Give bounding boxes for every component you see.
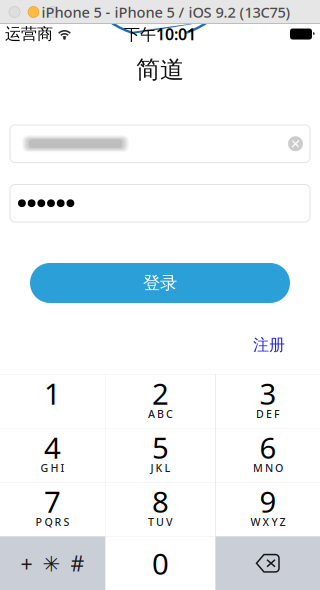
staticText: 下午10:01 <box>124 23 196 45</box>
staticText: + ✳ # <box>20 549 84 577</box>
staticText: 8 <box>152 482 169 521</box>
staticText: 注册 <box>253 335 285 355</box>
button[interactable]: 9 <box>216 482 320 536</box>
staticText: W X Y Z <box>250 515 285 529</box>
staticText: 登录 <box>143 272 177 294</box>
button[interactable]: 8 <box>105 482 215 536</box>
staticText: 2 <box>152 374 169 413</box>
staticText: 5 <box>152 428 169 467</box>
staticText: 1 <box>44 374 61 413</box>
staticText: G H I <box>40 461 64 475</box>
button[interactable]: + ✳ # <box>0 536 105 590</box>
staticText: D E F <box>256 407 280 421</box>
staticText: 运营商 <box>5 24 53 44</box>
staticText: 4 <box>44 428 61 467</box>
button[interactable]: 0 <box>105 536 215 590</box>
staticText: T U V <box>148 515 173 529</box>
staticText: P Q R S <box>35 515 69 529</box>
button[interactable]: 登录 <box>30 263 290 303</box>
button[interactable]: 2 <box>105 374 215 428</box>
staticText: 简道 <box>136 55 184 84</box>
button[interactable]: 注册 <box>249 332 289 358</box>
button[interactable]: 7 <box>0 482 105 536</box>
button[interactable]: 6 <box>216 428 320 482</box>
staticText: iPhone 5 - iPhone 5 / iOS 9.2 (13C75) <box>41 2 290 22</box>
button[interactable]: 1 <box>0 374 105 428</box>
button[interactable]: 4 <box>0 428 105 482</box>
staticText: 3 <box>259 374 276 413</box>
staticText: 7 <box>44 482 61 521</box>
staticText: J K L <box>150 461 170 475</box>
button[interactable]: 5 <box>105 428 215 482</box>
staticText: 9 <box>259 482 276 521</box>
staticText: 0 <box>152 544 169 583</box>
button[interactable] <box>216 536 320 590</box>
staticText: A B C <box>148 407 173 421</box>
staticText: 6 <box>259 428 276 467</box>
button[interactable]: Clear text <box>288 136 303 151</box>
button[interactable]: 3 <box>216 374 320 428</box>
staticText: M N O <box>253 461 283 475</box>
